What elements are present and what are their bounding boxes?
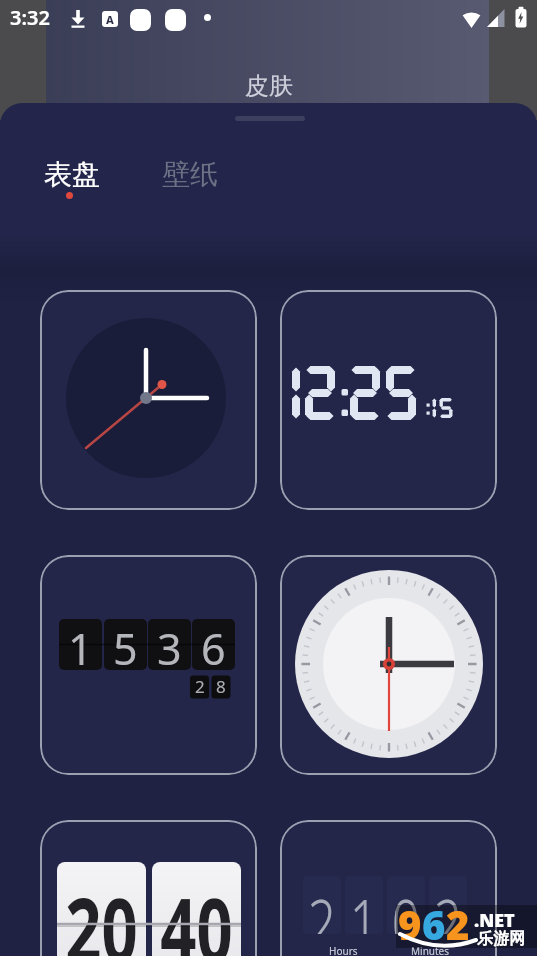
staticText: 5	[113, 619, 138, 670]
staticText: 40	[160, 868, 233, 956]
staticText: 8	[216, 675, 226, 698]
staticText: 1	[68, 619, 93, 670]
staticText: 3	[157, 619, 182, 670]
staticText: 皮肤	[245, 71, 293, 101]
staticText: 乐游网	[477, 929, 525, 949]
button[interactable]: 壁纸	[152, 150, 228, 196]
button[interactable]: 2	[280, 820, 497, 956]
staticText: Minutes	[411, 944, 450, 956]
staticText: 2	[308, 876, 336, 934]
staticText: 20	[65, 868, 138, 956]
staticText: 1	[350, 876, 378, 934]
staticText: 0	[392, 876, 420, 934]
staticText: 3:32	[10, 4, 50, 31]
button[interactable]	[280, 290, 497, 510]
button[interactable]	[40, 290, 257, 510]
button[interactable]: 20	[40, 820, 257, 956]
staticText: A	[106, 12, 114, 27]
button[interactable]: 1	[40, 555, 257, 775]
staticText: 6	[201, 619, 226, 670]
button[interactable]	[280, 555, 497, 775]
staticText: 9	[398, 897, 422, 951]
staticText: .NET	[474, 908, 515, 933]
staticText: 2	[446, 897, 470, 951]
staticText: 2	[434, 876, 462, 934]
staticText: 表盘	[44, 157, 100, 192]
staticText: 壁纸	[162, 157, 218, 192]
staticText: 6	[422, 897, 446, 951]
staticText: 2	[195, 675, 205, 698]
staticText: Hours	[329, 944, 358, 956]
button[interactable]: 表盘	[34, 150, 110, 206]
